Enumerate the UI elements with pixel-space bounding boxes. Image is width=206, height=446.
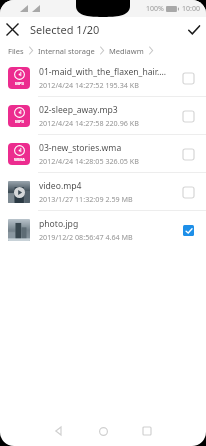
button[interactable]: Not selected xyxy=(178,68,198,88)
staticText: Files xyxy=(8,46,24,56)
button[interactable]: Selected xyxy=(178,220,198,240)
staticText: Mediawm xyxy=(109,46,144,56)
staticText: 01-maid_with_the_flaxen_hair.mp3 xyxy=(39,66,172,78)
staticText: 03-new_stories.wma xyxy=(39,142,122,154)
staticText: MP3 xyxy=(15,81,24,87)
button[interactable]: Back xyxy=(42,416,76,446)
staticText: 100% xyxy=(146,4,164,14)
button[interactable]: Internal storage xyxy=(38,42,95,59)
button[interactable]: video.mp4 xyxy=(0,173,206,211)
staticText: 2013/1/27 11:32:09 2.59 MB xyxy=(39,194,133,204)
staticText: Internal storage xyxy=(38,46,95,56)
staticText: 10:00 xyxy=(182,4,200,14)
button[interactable]: MP3 xyxy=(0,59,206,97)
staticText: 2019/12/2 08:56:47 4.64 MB xyxy=(39,232,133,242)
button[interactable]: MP3 xyxy=(0,97,206,135)
button[interactable]: Close xyxy=(0,17,25,42)
button[interactable]: Home xyxy=(86,416,120,446)
button[interactable]: Not selected xyxy=(178,106,198,126)
button[interactable]: Mediawm xyxy=(109,42,144,59)
staticText: 2012/4/24 14:27:52 195.34 KB xyxy=(39,80,139,90)
staticText: WMA xyxy=(14,157,25,163)
button[interactable]: Not selected xyxy=(178,182,198,202)
button[interactable]: WMA xyxy=(0,135,206,173)
staticText: photo.jpg xyxy=(39,218,79,230)
button[interactable]: photo.jpg xyxy=(0,211,206,248)
button[interactable]: Not selected xyxy=(178,144,198,164)
staticText: video.mp4 xyxy=(39,180,82,192)
staticText: MP3 xyxy=(15,119,24,125)
button[interactable]: Confirm xyxy=(181,17,206,42)
staticText: 02-sleep_away.mp3 xyxy=(39,104,118,116)
button[interactable]: Recents xyxy=(130,416,164,446)
button[interactable]: Files xyxy=(8,42,24,59)
staticText: 2012/4/24 14:28:05 326.05 KB xyxy=(39,156,139,166)
staticText: 2012/4/24 14:27:58 220.96 KB xyxy=(39,118,139,128)
staticText: Selected 1/20 xyxy=(30,22,100,37)
